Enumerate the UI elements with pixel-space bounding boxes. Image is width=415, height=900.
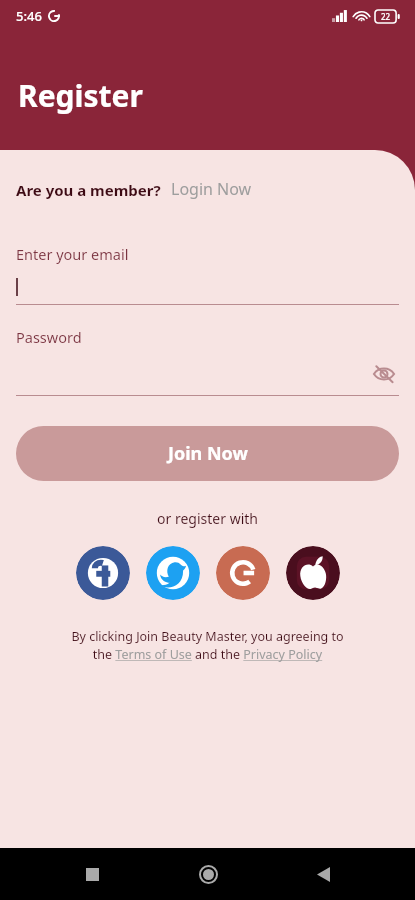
button[interactable]: Show password: [369, 359, 399, 389]
staticText: Are you a member?: [16, 180, 161, 200]
button[interactable]: Sign up with Facebook: [76, 546, 130, 600]
button[interactable]: Sign up with Apple: [286, 546, 340, 600]
button[interactable]: Sign up with Twitter: [146, 546, 200, 600]
staticText: or register with: [16, 509, 399, 528]
button[interactable]: Join Now: [16, 426, 399, 481]
button[interactable]: Back: [299, 850, 347, 898]
staticText: Join Now: [168, 441, 248, 466]
staticText: 22: [381, 11, 391, 22]
button[interactable]: Recents: [68, 850, 116, 898]
staticText: Password: [16, 327, 82, 347]
staticText: 5:46: [16, 7, 42, 25]
staticText: Enter your email: [16, 244, 129, 264]
button[interactable]: By clicking Join Beauty Master, you agre…: [16, 628, 399, 663]
button[interactable]: Password: [16, 327, 399, 396]
button[interactable]: Enter your email: [16, 244, 399, 305]
staticText: Register: [18, 75, 143, 116]
button[interactable]: Home: [184, 850, 232, 898]
button[interactable]: Login Now: [171, 178, 252, 200]
staticText: Login Now: [171, 178, 252, 200]
button[interactable]: Sign up with Google: [216, 546, 270, 600]
